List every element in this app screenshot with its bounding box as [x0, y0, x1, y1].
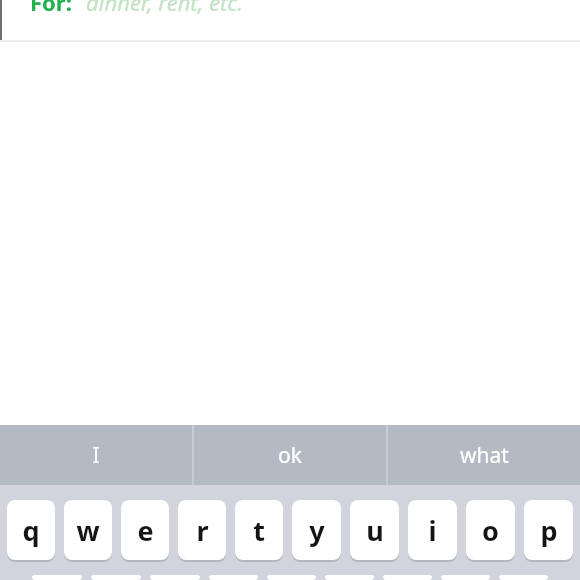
staticText: u	[366, 512, 384, 549]
button[interactable]: f	[209, 575, 258, 580]
button[interactable]: i	[408, 500, 457, 560]
staticText: what	[460, 441, 509, 470]
button[interactable]: h	[325, 575, 374, 580]
staticText: w	[76, 512, 100, 549]
button[interactable]: s	[91, 575, 141, 580]
button[interactable]: l	[499, 575, 548, 580]
button[interactable]: I	[0, 425, 192, 485]
button[interactable]: p	[524, 500, 573, 560]
staticText: ok	[278, 441, 302, 470]
staticText: e	[137, 512, 154, 549]
staticText: r	[196, 512, 209, 549]
staticText: For:	[30, 0, 72, 17]
staticText: y	[309, 512, 325, 549]
button[interactable]: u	[350, 500, 399, 560]
staticText: o	[482, 512, 499, 549]
staticText: dinner, rent, etc.	[86, 0, 243, 17]
button[interactable]: a	[32, 575, 82, 580]
button[interactable]: g	[267, 575, 316, 580]
button[interactable]: q	[7, 500, 55, 560]
staticText: I	[92, 441, 100, 470]
staticText: q	[22, 512, 40, 549]
button[interactable]: k	[441, 575, 490, 580]
staticText: i	[428, 512, 437, 549]
button[interactable]: r	[178, 500, 226, 560]
button[interactable]: e	[121, 500, 169, 560]
staticText: t	[253, 512, 265, 549]
button[interactable]: w	[64, 500, 112, 560]
button[interactable]: what	[388, 425, 580, 485]
button[interactable]: o	[466, 500, 515, 560]
button[interactable]: d	[150, 575, 200, 580]
button[interactable]: y	[292, 500, 341, 560]
button[interactable]: For:	[0, 0, 580, 40]
staticText: p	[540, 512, 558, 549]
button[interactable]: t	[235, 500, 283, 560]
button[interactable]: ok	[194, 425, 386, 485]
button[interactable]: j	[383, 575, 432, 580]
